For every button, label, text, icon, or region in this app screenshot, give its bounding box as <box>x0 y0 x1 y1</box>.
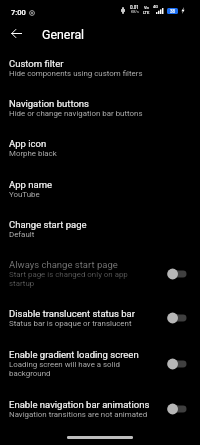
staticText: Vo <box>144 5 149 10</box>
button[interactable]: App icon <box>0 129 200 170</box>
staticText: Hide components using custom filters <box>9 69 150 78</box>
staticText: Navigation transitions are not animated <box>9 410 150 419</box>
staticText: 0.01 <box>130 5 139 10</box>
button[interactable]: Back <box>6 23 27 44</box>
button[interactable]: Disable translucent status bar <box>0 299 200 341</box>
staticText: Default <box>9 230 150 239</box>
staticText: Morphe black <box>9 149 150 158</box>
staticText: Always change start page <box>9 259 162 270</box>
button[interactable]: Change start page <box>0 210 200 250</box>
staticText: Hide or change navigation bar buttons <box>9 109 150 118</box>
button[interactable]: Toggle <box>164 267 188 281</box>
button[interactable]: Toggle <box>164 357 188 371</box>
staticText: Status bar is opaque or translucent <box>9 319 150 328</box>
staticText: Navigation buttons <box>9 98 162 109</box>
staticText: KB/s <box>131 10 139 14</box>
staticText: App icon <box>9 138 162 149</box>
staticText: App name <box>9 179 162 190</box>
staticText: Loading screen will have a solid backgro… <box>9 360 150 378</box>
staticText: Enable gradient loading screen <box>9 349 162 360</box>
staticText: LTE <box>143 10 150 15</box>
button[interactable]: Always change start page <box>0 250 200 300</box>
button[interactable]: Enable navigation bar animations <box>0 389 200 431</box>
staticText: Disable translucent status bar <box>9 308 162 319</box>
button[interactable]: Custom filter <box>0 49 200 90</box>
button[interactable]: Enable gradient loading screen <box>0 340 200 390</box>
staticText: 4G <box>153 4 158 9</box>
staticText: Change start page <box>9 219 162 230</box>
button[interactable]: Navigation buttons <box>0 89 200 130</box>
staticText: Custom filter <box>9 58 162 69</box>
staticText: Start page is changed only on app startu… <box>9 270 150 288</box>
button[interactable]: App name <box>0 170 200 210</box>
staticText: General <box>42 27 85 42</box>
staticText: 7:00 <box>11 8 26 17</box>
staticText: YouTube <box>9 190 150 199</box>
button[interactable]: Toggle <box>164 311 188 325</box>
staticText: 38 <box>170 9 176 14</box>
staticText: Enable navigation bar animations <box>9 399 162 410</box>
button[interactable]: Toggle <box>164 402 188 416</box>
